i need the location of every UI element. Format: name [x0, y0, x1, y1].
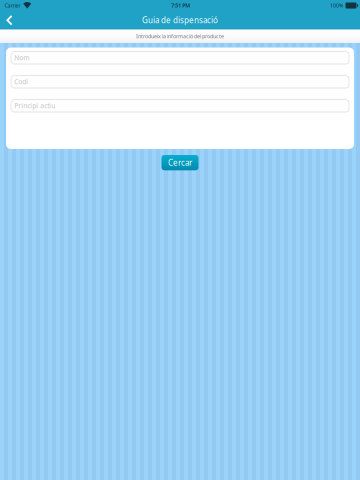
staticText: Cercar — [168, 157, 192, 168]
button[interactable]: Nom — [11, 51, 349, 64]
button[interactable]: Codi — [11, 75, 349, 88]
staticText: Carrier — [5, 2, 21, 9]
staticText: 7:51 PM — [171, 2, 190, 9]
staticText: 100% — [330, 2, 343, 9]
staticText: Guia de dispensació — [142, 15, 218, 25]
button[interactable]: Principi actiu — [11, 99, 349, 112]
button[interactable]: Back — [0, 11, 19, 29]
staticText: Introdueix la informació del producte — [136, 33, 224, 40]
staticText: Principi actiu — [14, 101, 55, 110]
staticText: Codi — [14, 77, 28, 86]
button[interactable]: Cercar — [161, 155, 198, 170]
staticText: Nom — [14, 53, 29, 62]
